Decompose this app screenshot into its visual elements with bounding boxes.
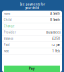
staticText: £250 xyxy=(52,37,60,40)
staticText: B Smith xyxy=(50,18,60,22)
staticText: See payments for your child xyxy=(19,3,44,10)
staticText: Pay xyxy=(29,67,35,71)
staticText: Provider xyxy=(4,31,16,34)
staticText: Busy Bees xyxy=(46,31,60,34)
staticText: 12 Jan xyxy=(51,43,60,47)
staticText: 1 Feb xyxy=(52,49,60,53)
staticText: Name xyxy=(4,12,11,15)
staticText: A Smith xyxy=(50,12,60,15)
staticText: Balance xyxy=(4,37,14,40)
button[interactable]: Pay xyxy=(4,66,60,72)
staticText: Change xyxy=(4,24,15,28)
staticText: Next xyxy=(4,49,9,53)
button[interactable]: Change xyxy=(2,23,62,29)
staticText: Child xyxy=(4,18,12,22)
staticText: Paid xyxy=(4,43,10,47)
